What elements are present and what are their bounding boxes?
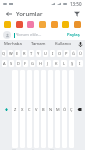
staticText: C	[28, 107, 31, 112]
button[interactable]: Filter	[72, 9, 81, 18]
button[interactable]: Emoji	[4, 21, 11, 28]
staticText: Paylaş	[67, 32, 80, 38]
staticText: I	[52, 51, 54, 56]
button[interactable]: Ğ	[71, 50, 76, 57]
staticText: V	[35, 107, 38, 112]
staticText: I	[79, 61, 81, 66]
button[interactable]: Tamam	[26, 40, 51, 48]
button[interactable]: P	[64, 50, 69, 57]
button[interactable]: S	[9, 60, 14, 67]
staticText: M	[56, 107, 60, 112]
button[interactable]: R	[22, 50, 27, 57]
staticText: B	[42, 107, 45, 112]
button[interactable]: Emoji	[51, 21, 58, 28]
button[interactable]: D	[16, 60, 21, 67]
button[interactable]: Ü	[78, 50, 83, 57]
staticText: Yorumlar	[16, 10, 43, 18]
button[interactable]: E	[15, 50, 20, 57]
staticText: S	[10, 61, 13, 66]
button[interactable]: Voice input	[76, 40, 85, 48]
staticText: F	[24, 61, 27, 66]
button[interactable]: Emoji	[39, 21, 46, 28]
staticText: T	[30, 51, 33, 56]
button[interactable]: J	[45, 60, 51, 67]
staticText: W	[9, 51, 13, 56]
button[interactable]: U	[43, 50, 48, 57]
staticText: N	[49, 107, 53, 112]
button[interactable]: Q	[2, 50, 6, 57]
staticText: Merhaba	[4, 41, 22, 47]
button[interactable]: W	[8, 50, 13, 57]
button[interactable]: F	[23, 60, 28, 67]
staticText: Tamam	[31, 41, 46, 47]
button[interactable]: G	[30, 60, 35, 67]
button[interactable]: Ç	[69, 70, 74, 148]
staticText: G	[31, 61, 34, 66]
staticText: Ş	[71, 61, 74, 66]
button[interactable]: Ş	[69, 60, 75, 67]
button[interactable]: Merhaba	[0, 40, 26, 48]
button[interactable]: Back	[4, 9, 13, 18]
button[interactable]: L	[61, 60, 67, 67]
staticText: Z	[14, 107, 17, 112]
button[interactable]: Z	[12, 70, 18, 148]
staticText: D	[17, 61, 20, 66]
staticText: Ö	[63, 107, 67, 112]
button[interactable]: Emoji	[74, 21, 81, 28]
button[interactable]: C	[27, 70, 32, 148]
button[interactable]: A	[2, 60, 7, 67]
staticText: Ü	[79, 51, 82, 56]
button[interactable]: K	[53, 60, 59, 67]
button[interactable]: Paylaş	[65, 31, 82, 39]
button[interactable]: Shift	[2, 106, 10, 113]
staticText: L	[63, 61, 66, 66]
button[interactable]: Y	[36, 50, 41, 57]
staticText: J	[47, 61, 49, 66]
button[interactable]: O	[57, 50, 62, 57]
button[interactable]: N	[48, 70, 53, 148]
button[interactable]: Kullanıcı	[51, 40, 76, 48]
button[interactable]: M	[55, 70, 60, 148]
button[interactable]: I	[77, 60, 83, 67]
staticText: U	[44, 51, 47, 56]
staticText: H	[39, 61, 42, 66]
button[interactable]: X	[20, 70, 25, 148]
staticText: O	[58, 51, 62, 56]
staticText: Kullanıcı	[55, 41, 72, 47]
staticText: Yorum ekle...	[16, 32, 42, 38]
staticText: R	[23, 51, 26, 56]
staticText: Ç	[70, 107, 73, 112]
staticText: Y	[37, 51, 40, 56]
staticText: A	[3, 61, 6, 66]
button[interactable]: Ö	[62, 70, 67, 148]
staticText: 13:50	[70, 1, 82, 7]
staticText: K	[55, 61, 58, 66]
staticText: X	[21, 107, 24, 112]
staticText: Ğ	[72, 51, 75, 56]
button[interactable]: T	[29, 50, 34, 57]
button[interactable]: Backspace	[76, 106, 83, 113]
button[interactable]: Emoji	[27, 21, 34, 28]
button[interactable]: Emoji	[62, 21, 69, 28]
staticText: P	[65, 51, 68, 56]
button[interactable]: I	[50, 50, 55, 57]
staticText: E	[16, 51, 19, 56]
staticText: Q	[2, 51, 6, 56]
button[interactable]: H	[37, 60, 43, 67]
button[interactable]: Emoji	[16, 21, 23, 28]
button[interactable]: B	[41, 70, 46, 148]
button[interactable]: V	[34, 70, 39, 148]
